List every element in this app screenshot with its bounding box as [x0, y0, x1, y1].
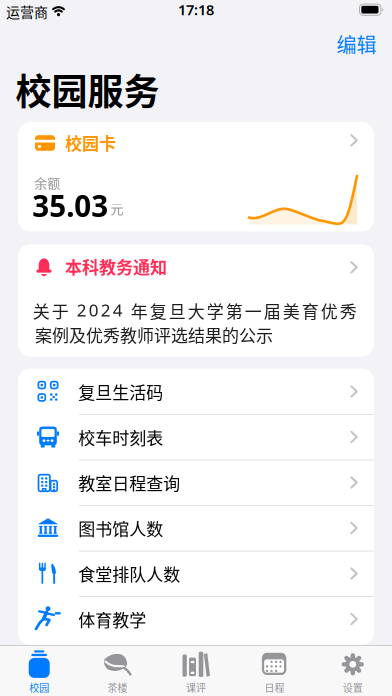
- staticText: 校园: [29, 680, 49, 694]
- staticText: 运营商: [6, 2, 48, 21]
- button[interactable]: 本科教务通知: [18, 244, 374, 356]
- button[interactable]: 食堂排队人数: [18, 550, 374, 596]
- staticText: 课评: [186, 680, 206, 694]
- staticText: 日程: [264, 680, 284, 694]
- button[interactable]: 校园: [0, 646, 78, 696]
- staticText: 本科教务通知: [65, 254, 167, 278]
- button[interactable]: 设置: [314, 646, 392, 696]
- staticText: 校园服务: [15, 64, 159, 115]
- staticText: 案例及优秀教师评选结果的公示: [35, 323, 273, 347]
- staticText: 茶楼: [108, 680, 128, 694]
- staticText: 元: [110, 199, 123, 217]
- staticText: 教室日程查询: [78, 471, 180, 495]
- staticText: 图书馆人数: [78, 516, 163, 540]
- staticText: 校车时刻表: [78, 425, 163, 449]
- staticText: 编辑: [336, 30, 376, 58]
- button[interactable]: 教室日程查询: [18, 459, 374, 505]
- staticText: 35.03: [32, 186, 108, 225]
- button[interactable]: 复旦生活码: [18, 368, 374, 414]
- staticText: 17:18: [178, 0, 214, 19]
- staticText: 余额: [34, 173, 60, 192]
- staticText: 体育教学: [78, 607, 146, 631]
- staticText: 设置: [343, 680, 363, 694]
- button[interactable]: 校园卡: [18, 122, 374, 231]
- button[interactable]: 图书馆人数: [18, 505, 374, 550]
- button[interactable]: 编辑: [336, 30, 376, 58]
- staticText: 复旦生活码: [78, 380, 163, 404]
- button[interactable]: 校车时刻表: [18, 414, 374, 459]
- staticText: 食堂排队人数: [78, 562, 180, 586]
- button[interactable]: 日程: [235, 646, 314, 696]
- staticText: 校园卡: [65, 130, 116, 154]
- button[interactable]: 课评: [157, 646, 235, 696]
- staticText: 关于 2024 年复旦大学第一届美育优秀: [33, 298, 357, 322]
- button[interactable]: 体育教学: [18, 596, 374, 641]
- button[interactable]: 茶楼: [78, 646, 157, 696]
